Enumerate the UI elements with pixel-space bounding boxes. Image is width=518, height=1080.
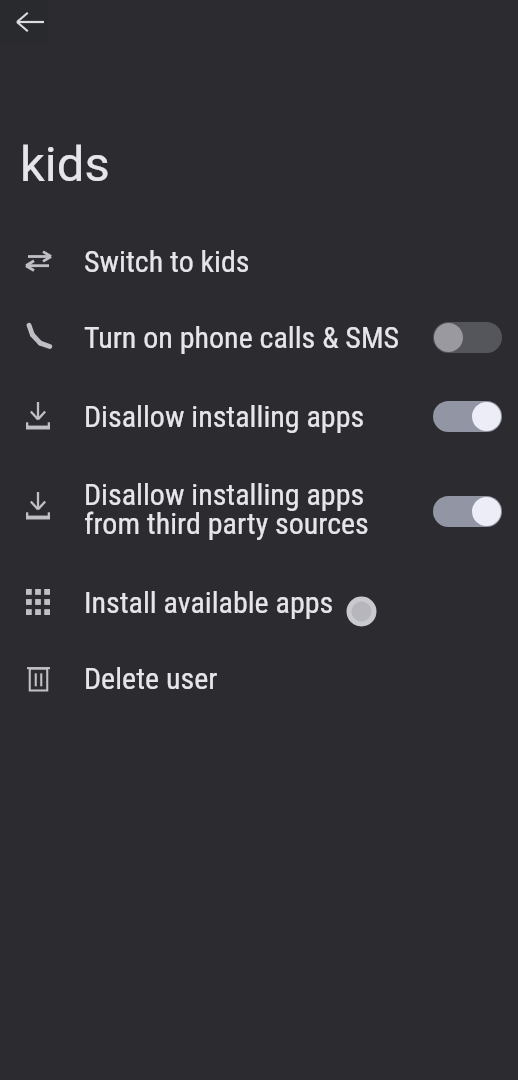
button[interactable]: Turn on phone calls & SMS	[0, 294, 518, 380]
button[interactable]: Toggle on	[433, 496, 502, 527]
staticText: Turn on phone calls & SMS	[84, 320, 400, 355]
staticText: Install available apps	[84, 585, 334, 620]
button[interactable]: Switch to kids	[0, 228, 518, 294]
staticText: Delete user	[84, 661, 218, 696]
button[interactable]: Toggle on	[433, 401, 502, 432]
staticText: kids	[20, 136, 110, 193]
button[interactable]: Toggle off	[433, 322, 502, 353]
button[interactable]: Back	[6, 0, 54, 46]
staticText: Disallow installing apps from third part…	[84, 477, 369, 541]
button[interactable]: Disallow installing apps	[0, 380, 518, 453]
button[interactable]: Disallow installing apps from third part…	[0, 453, 518, 569]
button[interactable]: Install available apps	[0, 569, 518, 635]
button[interactable]: Delete user	[0, 635, 518, 721]
staticText: Switch to kids	[84, 244, 250, 279]
staticText: Disallow installing apps	[84, 399, 365, 434]
